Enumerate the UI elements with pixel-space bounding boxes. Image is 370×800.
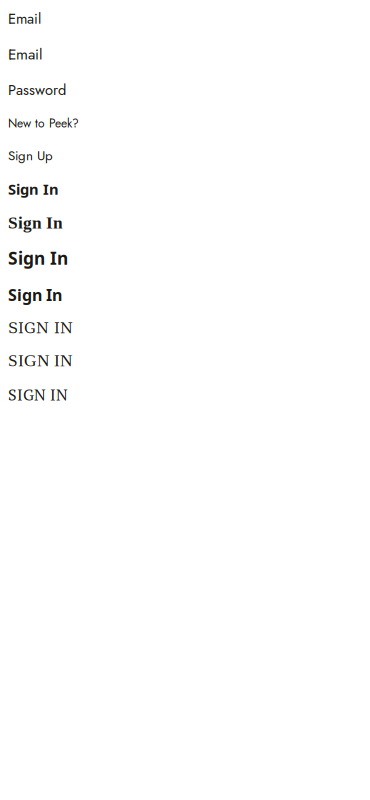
staticText: SIGN IN [8,320,73,337]
staticText: Password [8,79,66,100]
staticText: Sign In [8,213,63,232]
staticText: SIGN IN [8,384,68,405]
staticText: Sign In [8,179,59,199]
staticText: SIGN IN [8,351,73,370]
staticText: Email [8,43,43,65]
staticText: Sign Up [8,146,53,165]
staticText: New to Peek? [8,114,79,132]
staticText: Email [8,8,41,29]
staticText: Sign In [8,246,68,270]
staticText: Sign In [8,284,62,306]
